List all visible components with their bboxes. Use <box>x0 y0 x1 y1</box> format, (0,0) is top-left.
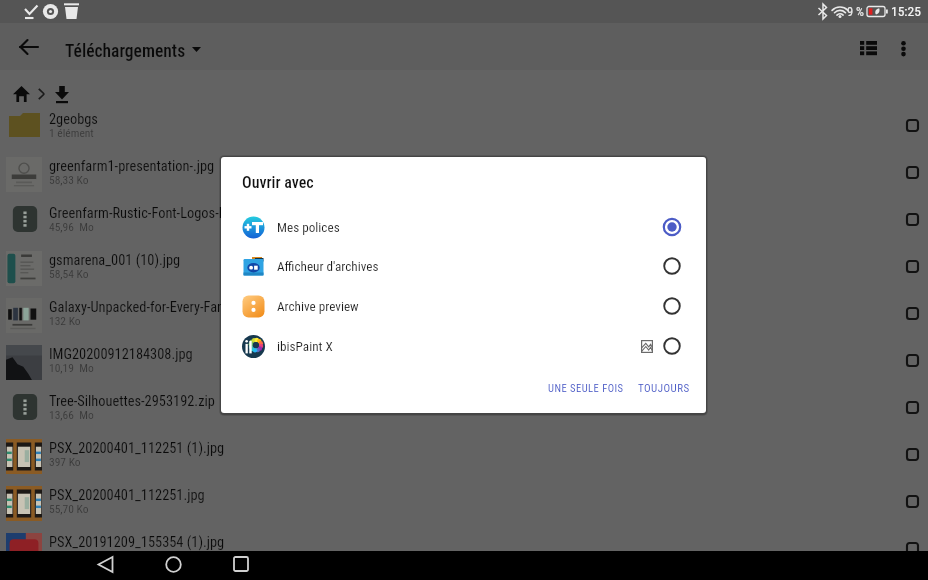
button[interactable]: Select Tree-Silhouettes-2953192.zip <box>899 394 925 420</box>
button[interactable]: Afficheur d'archives <box>221 246 706 286</box>
staticText: 1 élément <box>49 126 94 139</box>
button[interactable]: ibisPaint X <box>221 326 706 366</box>
button[interactable]: PSX_20200401_112251.jpg <box>0 486 928 533</box>
button[interactable]: Recent apps <box>229 552 253 576</box>
button[interactable]: Select IMG20200912184308.jpg <box>899 347 925 373</box>
staticText: PSX_20191209_155354 (1).jpg <box>49 534 225 551</box>
button[interactable]: More options <box>887 32 919 64</box>
button[interactable]: Galaxy-Unpacked-for-Every-Fan <box>0 298 928 345</box>
staticText: Galaxy-Unpacked-for-Every-Fan <box>49 299 225 316</box>
button[interactable]: Greenfarm-Rustic-Font-Logos-D <box>0 204 928 251</box>
button[interactable]: PSX_20200401_112251 (1).jpg <box>0 439 928 486</box>
button[interactable]: Back <box>13 31 45 63</box>
staticText: 58,54 Ko <box>49 267 89 280</box>
button[interactable]: Change view <box>852 32 884 64</box>
staticText: PSX_20200401_112251 (1).jpg <box>49 440 225 457</box>
button[interactable]: Mes polices <box>221 207 706 247</box>
staticText: 13,66 Mo <box>49 408 94 421</box>
staticText: Téléchargements <box>65 41 186 62</box>
button[interactable]: PSX_20191209_155354 (1).jpg <box>0 533 928 580</box>
staticText: 397 Ko <box>49 455 81 468</box>
button[interactable]: Select Greenfarm-Rustic-Font-Logos-D <box>899 206 925 232</box>
staticText: Tree-Silhouettes-2953192.zip <box>49 393 215 410</box>
staticText: IMG20200912184308.jpg <box>49 346 193 363</box>
staticText: Ouvrir avec <box>242 173 314 192</box>
staticText: greenfarm1-presentation-.jpg <box>49 158 215 175</box>
staticText: gsmarena_001 (10).jpg <box>49 252 181 269</box>
staticText: PSX_20200401_112251.jpg <box>49 487 205 504</box>
button[interactable]: gsmarena_001 (10).jpg <box>0 251 928 298</box>
staticText: Mes polices <box>277 220 340 235</box>
staticText: 10,19 Mo <box>49 361 94 374</box>
button[interactable]: Select 2geobgs <box>899 112 925 138</box>
staticText: 2geobgs <box>49 111 98 128</box>
staticText: 45,96 Mo <box>49 220 94 233</box>
button[interactable]: 2geobgs <box>0 110 928 157</box>
button[interactable]: Select PSX_20191209_155354 (1).jpg <box>899 535 925 561</box>
button[interactable]: Downloads folder <box>48 80 76 108</box>
staticText: UNE SEULE FOIS <box>548 382 624 394</box>
button[interactable]: TOUJOURS <box>630 375 698 402</box>
staticText: Archive preview <box>277 299 359 314</box>
button[interactable]: Tree-Silhouettes-2953192.zip <box>0 392 928 439</box>
button[interactable]: greenfarm1-presentation-.jpg <box>0 157 928 204</box>
button[interactable]: Archive preview <box>221 286 706 326</box>
staticText: ibisPaint X <box>277 339 333 354</box>
button[interactable]: IMG20200912184308.jpg <box>0 345 928 392</box>
button[interactable]: Home folder <box>7 80 35 108</box>
staticText: TOUJOURS <box>638 382 690 395</box>
button[interactable]: Back <box>93 552 117 576</box>
button[interactable]: UNE SEULE FOIS <box>540 375 632 401</box>
staticText: Afficheur d'archives <box>277 259 379 274</box>
staticText: 58,33 Ko <box>49 173 89 186</box>
button[interactable]: Select Galaxy-Unpacked-for-Every-Fan <box>899 300 925 326</box>
staticText: 132 Ko <box>49 314 81 327</box>
button[interactable]: Select gsmarena_001 (10).jpg <box>899 253 925 279</box>
staticText: Greenfarm-Rustic-Font-Logos-D <box>49 205 227 222</box>
button[interactable]: Home <box>161 552 185 576</box>
button[interactable]: Select greenfarm1-presentation-.jpg <box>899 159 925 185</box>
staticText: 55,70 Ko <box>49 502 89 515</box>
button[interactable]: Select PSX_20200401_112251 (1).jpg <box>899 441 925 467</box>
button[interactable]: Select PSX_20200401_112251.jpg <box>899 488 925 514</box>
staticText: 15:25 <box>891 3 921 19</box>
staticText: 9 % <box>847 4 864 19</box>
